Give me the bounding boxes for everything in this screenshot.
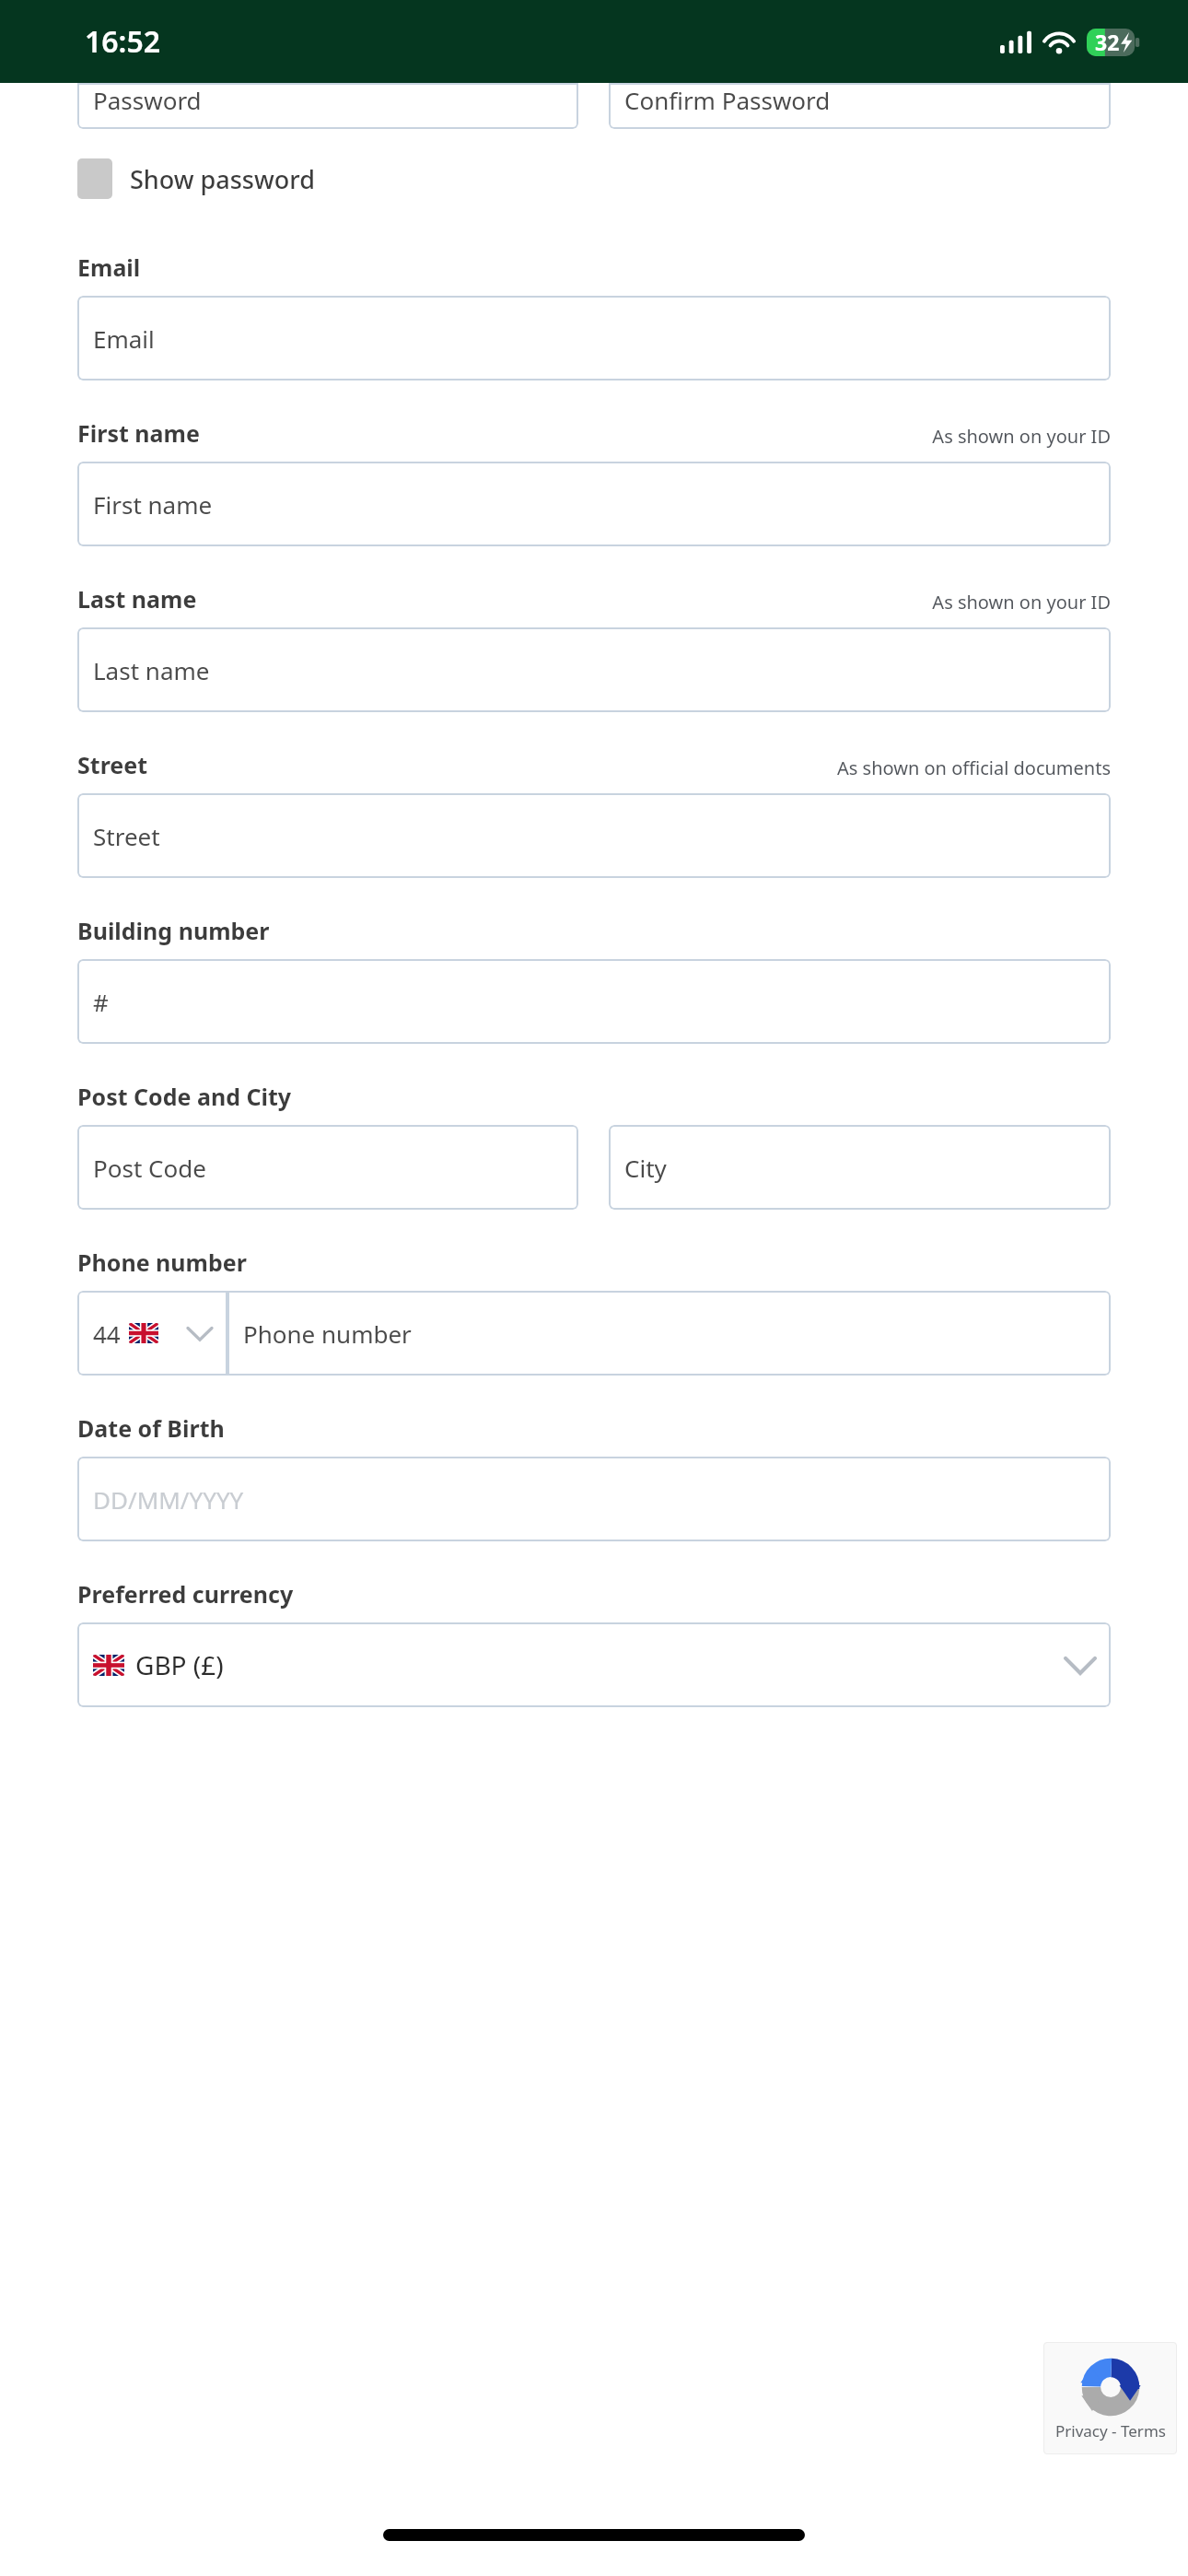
staticText: First name (77, 417, 200, 449)
staticText: Email (93, 322, 155, 355)
button[interactable]: Post Code (77, 1125, 578, 1210)
staticText: # (93, 986, 109, 1018)
button[interactable]: Password (77, 83, 578, 129)
staticText: Password (93, 84, 202, 116)
button[interactable]: 44 (77, 1291, 227, 1376)
staticText: Email (77, 252, 141, 283)
staticText: Street (77, 749, 148, 780)
staticText: Privacy - Terms (1055, 2420, 1166, 2441)
button[interactable]: # (77, 959, 1111, 1044)
staticText: DD/MM/YYYY (93, 1483, 244, 1516)
staticText: City (624, 1152, 667, 1184)
button[interactable]: Show password (77, 158, 322, 199)
staticText: Post Code and City (77, 1081, 292, 1112)
button[interactable]: GBP (£) (77, 1622, 1111, 1707)
staticText: Last name (77, 583, 197, 615)
button[interactable]: Last name (77, 627, 1111, 712)
staticText: As shown on your ID (932, 590, 1111, 615)
button[interactable]: DD/MM/YYYY (77, 1457, 1111, 1541)
staticText: Preferred currency (77, 1578, 294, 1610)
staticText: 16:52 (85, 21, 161, 62)
button[interactable]: First name (77, 462, 1111, 546)
button[interactable]: Phone number (227, 1291, 1111, 1376)
button[interactable]: reCAPTCHA Privacy and Terms (1043, 2342, 1177, 2454)
staticText: Last name (93, 654, 210, 686)
button[interactable]: Email (77, 296, 1111, 381)
staticText: 44 (93, 1317, 121, 1350)
staticText: As shown on your ID (932, 424, 1111, 449)
staticText: 32 (1095, 28, 1120, 56)
staticText: Street (93, 820, 160, 852)
staticText: Post Code (93, 1152, 206, 1184)
staticText: Confirm Password (624, 84, 831, 116)
staticText: GBP (£) (135, 1647, 224, 1682)
staticText: Date of Birth (77, 1412, 225, 1444)
staticText: Show password (130, 162, 315, 196)
button[interactable]: Confirm Password (609, 83, 1111, 129)
staticText: Building number (77, 915, 270, 946)
staticText: As shown on official documents (837, 755, 1111, 780)
button[interactable]: City (609, 1125, 1111, 1210)
staticText: Phone number (243, 1317, 412, 1350)
button[interactable]: Street (77, 793, 1111, 878)
staticText: First name (93, 488, 213, 521)
staticText: Phone number (77, 1247, 247, 1278)
